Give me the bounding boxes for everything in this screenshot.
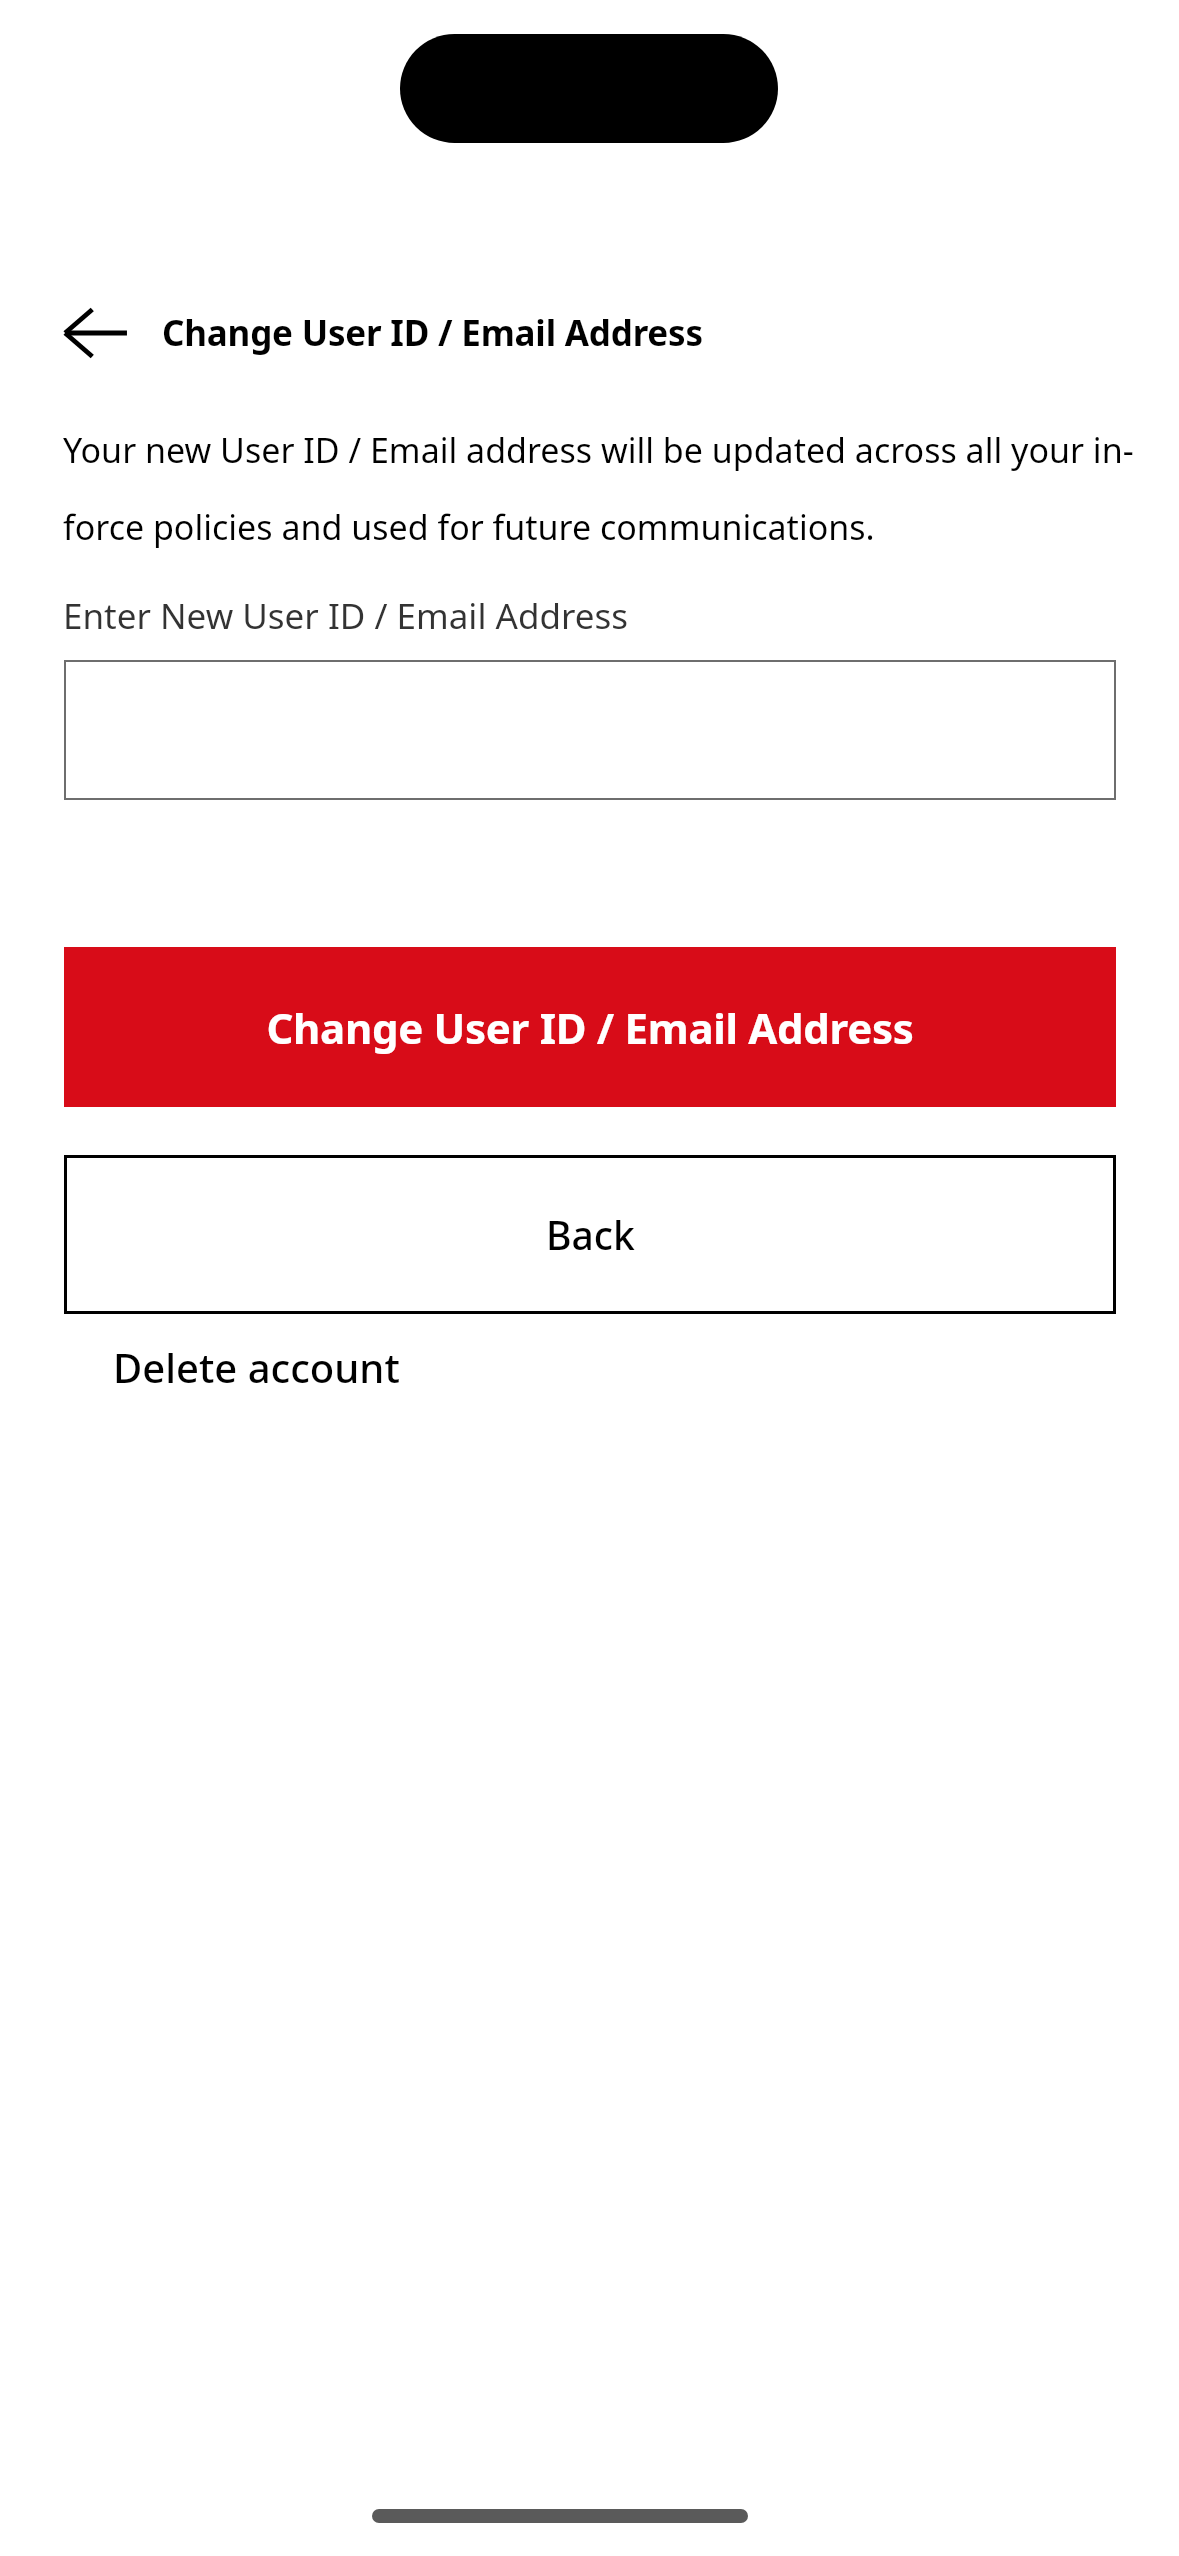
staticText: Back	[546, 1208, 635, 1261]
button[interactable]: Back	[50, 296, 140, 370]
staticText: Enter New User ID / Email Address	[63, 592, 628, 640]
button[interactable]: Back	[64, 1155, 1116, 1314]
button[interactable]: New User ID / Email Address input	[64, 660, 1116, 800]
staticText: Delete account	[113, 1340, 400, 1394]
staticText: Change User ID / Email Address	[162, 309, 703, 357]
staticText: Change User ID / Email Address	[266, 999, 914, 1056]
staticText: Your new User ID / Email address will be…	[63, 427, 1143, 550]
button[interactable]: Change User ID / Email Address	[64, 947, 1116, 1107]
button[interactable]: Delete account	[113, 1340, 400, 1394]
